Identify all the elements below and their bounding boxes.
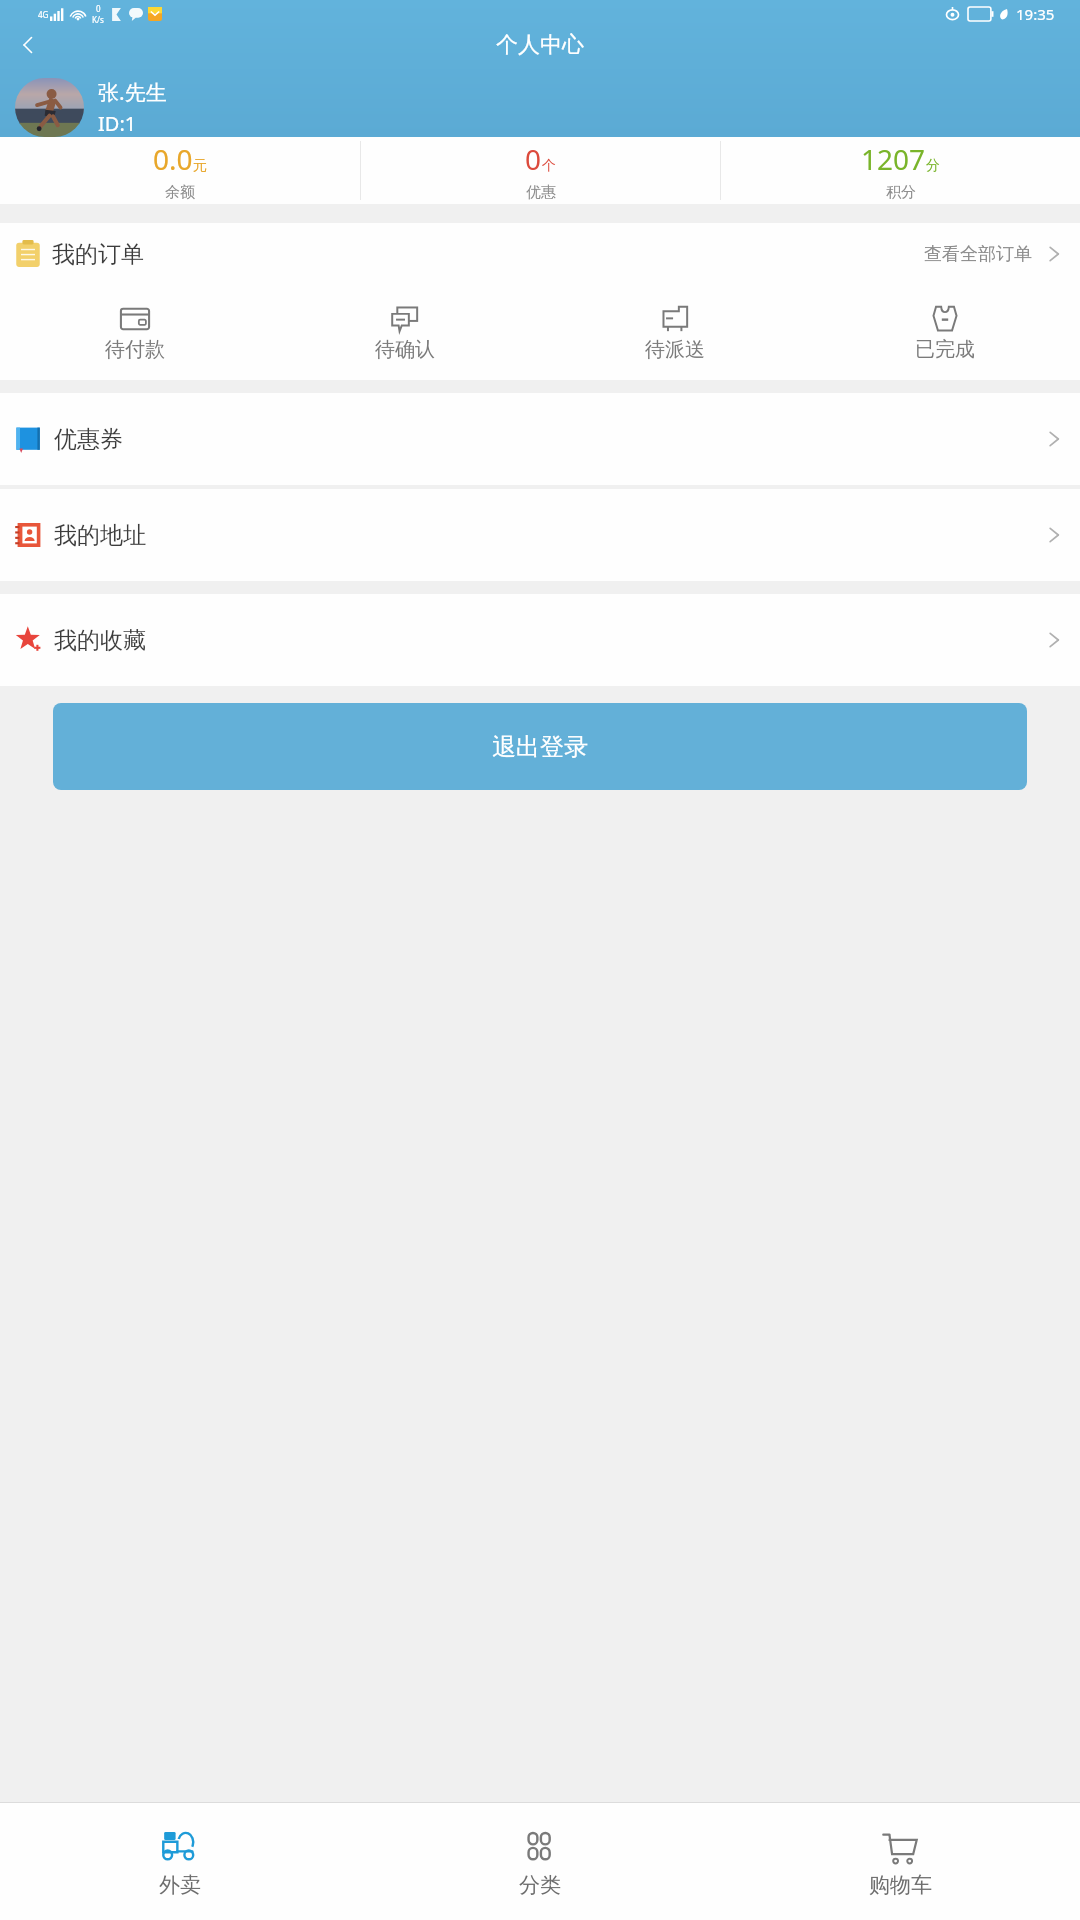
button[interactable]: 优惠券	[0, 393, 1080, 485]
button[interactable]: 1207	[721, 137, 1080, 204]
staticText: 个人中心	[496, 31, 584, 59]
staticText: ID:1	[98, 110, 137, 137]
staticText: 查看全部订单	[924, 243, 1032, 266]
button[interactable]: 分类	[360, 1803, 720, 1920]
staticText: 待付款	[105, 337, 165, 362]
button[interactable]: 退出登录	[53, 703, 1027, 790]
staticText: K/s	[92, 14, 104, 25]
staticText: 个	[542, 157, 556, 175]
other: Open	[1042, 628, 1066, 652]
staticText: 我的收藏	[54, 626, 146, 655]
staticText: 已完成	[915, 337, 975, 362]
staticText: 积分	[886, 183, 916, 202]
other: Open	[1042, 523, 1066, 547]
button[interactable]: 购物车	[720, 1803, 1080, 1920]
staticText: 0	[96, 3, 101, 14]
staticText: 19:35	[1016, 4, 1055, 24]
button[interactable]: 我的地址	[0, 489, 1080, 581]
other: Open	[1042, 242, 1066, 266]
button[interactable]: 我的收藏	[0, 594, 1080, 686]
button[interactable]: 0	[361, 137, 720, 204]
button[interactable]: 0.0	[0, 137, 360, 204]
staticText: 1207	[861, 140, 926, 178]
staticText: 待派送	[645, 337, 705, 362]
staticText: 优惠	[526, 183, 556, 202]
button[interactable]: 我的订单	[0, 223, 1080, 285]
staticText: 分	[926, 157, 940, 175]
button[interactable]: 待派送	[540, 285, 810, 380]
button[interactable]: 待付款	[0, 285, 270, 380]
staticText: 0	[525, 140, 542, 178]
staticText: 4G	[38, 9, 49, 20]
staticText: 优惠券	[54, 425, 123, 454]
staticText: 退出登录	[492, 732, 588, 762]
button[interactable]: 待确认	[270, 285, 540, 380]
staticText: 我的订单	[52, 240, 144, 269]
staticText: 待确认	[375, 337, 435, 362]
button[interactable]: Back	[6, 27, 50, 62]
button[interactable]: 已完成	[810, 285, 1080, 380]
staticText: 我的地址	[54, 521, 146, 550]
staticText: 张.先生	[98, 78, 167, 107]
other: Open	[1042, 427, 1066, 451]
staticText: 外卖	[159, 1872, 201, 1898]
staticText: 购物车	[869, 1872, 932, 1898]
staticText: 元	[193, 157, 207, 175]
staticText: 0.0	[153, 140, 193, 178]
button[interactable]: 外卖	[0, 1803, 360, 1920]
staticText: 分类	[519, 1872, 561, 1898]
staticText: 余额	[165, 183, 195, 202]
